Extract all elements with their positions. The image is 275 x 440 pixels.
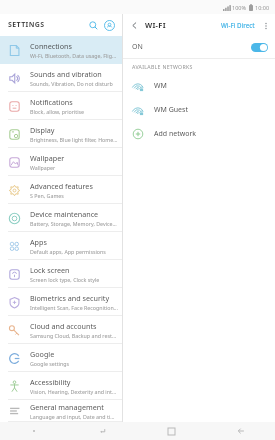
staticText: 10:00	[255, 4, 270, 11]
staticText: Google	[30, 349, 55, 359]
staticText: WM	[154, 81, 167, 91]
button[interactable]: Lock screen	[0, 260, 122, 288]
button[interactable]: Device maintenance	[0, 204, 122, 232]
button[interactable]: Accessibility	[0, 372, 122, 400]
button[interactable]: More options	[259, 19, 272, 32]
staticText: AVAILABLE NETWORKS	[132, 63, 193, 70]
staticText: Cloud and accounts	[30, 321, 97, 331]
staticText: Device maintenance	[30, 209, 99, 219]
button[interactable]: Wallpaper	[0, 148, 122, 176]
staticText: Wi-Fi, Bluetooth, Data usage, Flight...	[30, 52, 118, 59]
staticText: Display	[30, 125, 55, 135]
staticText: Advanced features	[30, 181, 93, 191]
staticText: Lock screen	[30, 265, 70, 275]
staticText: Sounds and vibration	[30, 69, 102, 79]
staticText: Vision, Hearing, Dexterity and intera...	[30, 388, 118, 395]
staticText: Battery, Storage, Memory, Device se...	[30, 220, 118, 227]
button[interactable]: Cloud and accounts	[0, 316, 122, 344]
staticText: Brightness, Blue light filter, Home sc..…	[30, 136, 118, 143]
staticText: Connections	[30, 41, 72, 51]
button[interactable]: Hide keyboard	[68, 422, 137, 440]
button[interactable]: Account	[102, 18, 116, 32]
button[interactable]: Add network	[123, 122, 275, 146]
button[interactable]: Google	[0, 344, 122, 372]
staticText: Apps	[30, 237, 47, 247]
button[interactable]: General management	[0, 400, 122, 422]
staticText: Wi-Fi Direct	[221, 21, 255, 29]
staticText: Notifications	[30, 97, 73, 107]
staticText: Wallpaper	[30, 164, 56, 171]
staticText: S Pen, Games	[30, 192, 64, 199]
staticText: Samsung Cloud, Backup and restor...	[30, 332, 118, 339]
button[interactable]: Display	[0, 120, 122, 148]
button[interactable]: Wi-Fi Direct	[219, 18, 257, 32]
button[interactable]: Back	[206, 422, 275, 440]
staticText: SETTINGS	[8, 20, 45, 30]
staticText: Add network	[154, 129, 197, 139]
staticText: Accessibility	[30, 377, 71, 387]
staticText: Language and input, Date and time...	[30, 413, 118, 420]
button[interactable]: Notifications	[0, 92, 122, 120]
staticText: Intelligent Scan, Face Recognition...	[30, 304, 118, 311]
button[interactable]: Back	[127, 18, 141, 32]
staticText: Google settings	[30, 360, 70, 367]
staticText: WM Guest	[154, 105, 188, 115]
staticText: 100%	[232, 4, 247, 11]
staticText: Sounds, Vibration, Do not disturb	[30, 80, 113, 87]
staticText: Default apps, App permissions	[30, 248, 106, 255]
staticText: Wallpaper	[30, 153, 65, 163]
button[interactable]: Apps	[0, 232, 122, 260]
button[interactable]: WM	[123, 74, 275, 98]
button[interactable]: WM Guest	[123, 98, 275, 122]
button[interactable]: Connections	[0, 36, 122, 64]
staticText: General management	[30, 402, 104, 412]
button[interactable]: Advanced features	[0, 176, 122, 204]
button[interactable]: Sounds and vibration	[0, 64, 122, 92]
staticText: WI-FI	[145, 20, 166, 30]
button[interactable]: ON	[123, 36, 275, 58]
button[interactable]: Search	[86, 18, 100, 32]
staticText: Screen lock type, Clock style	[30, 276, 100, 283]
button[interactable]: Biometrics and security	[0, 288, 122, 316]
staticText: ON	[132, 42, 143, 52]
staticText: Biometrics and security	[30, 293, 110, 303]
staticText: Block, allow, prioritise	[30, 108, 85, 115]
button[interactable]: Recent apps	[137, 422, 206, 440]
